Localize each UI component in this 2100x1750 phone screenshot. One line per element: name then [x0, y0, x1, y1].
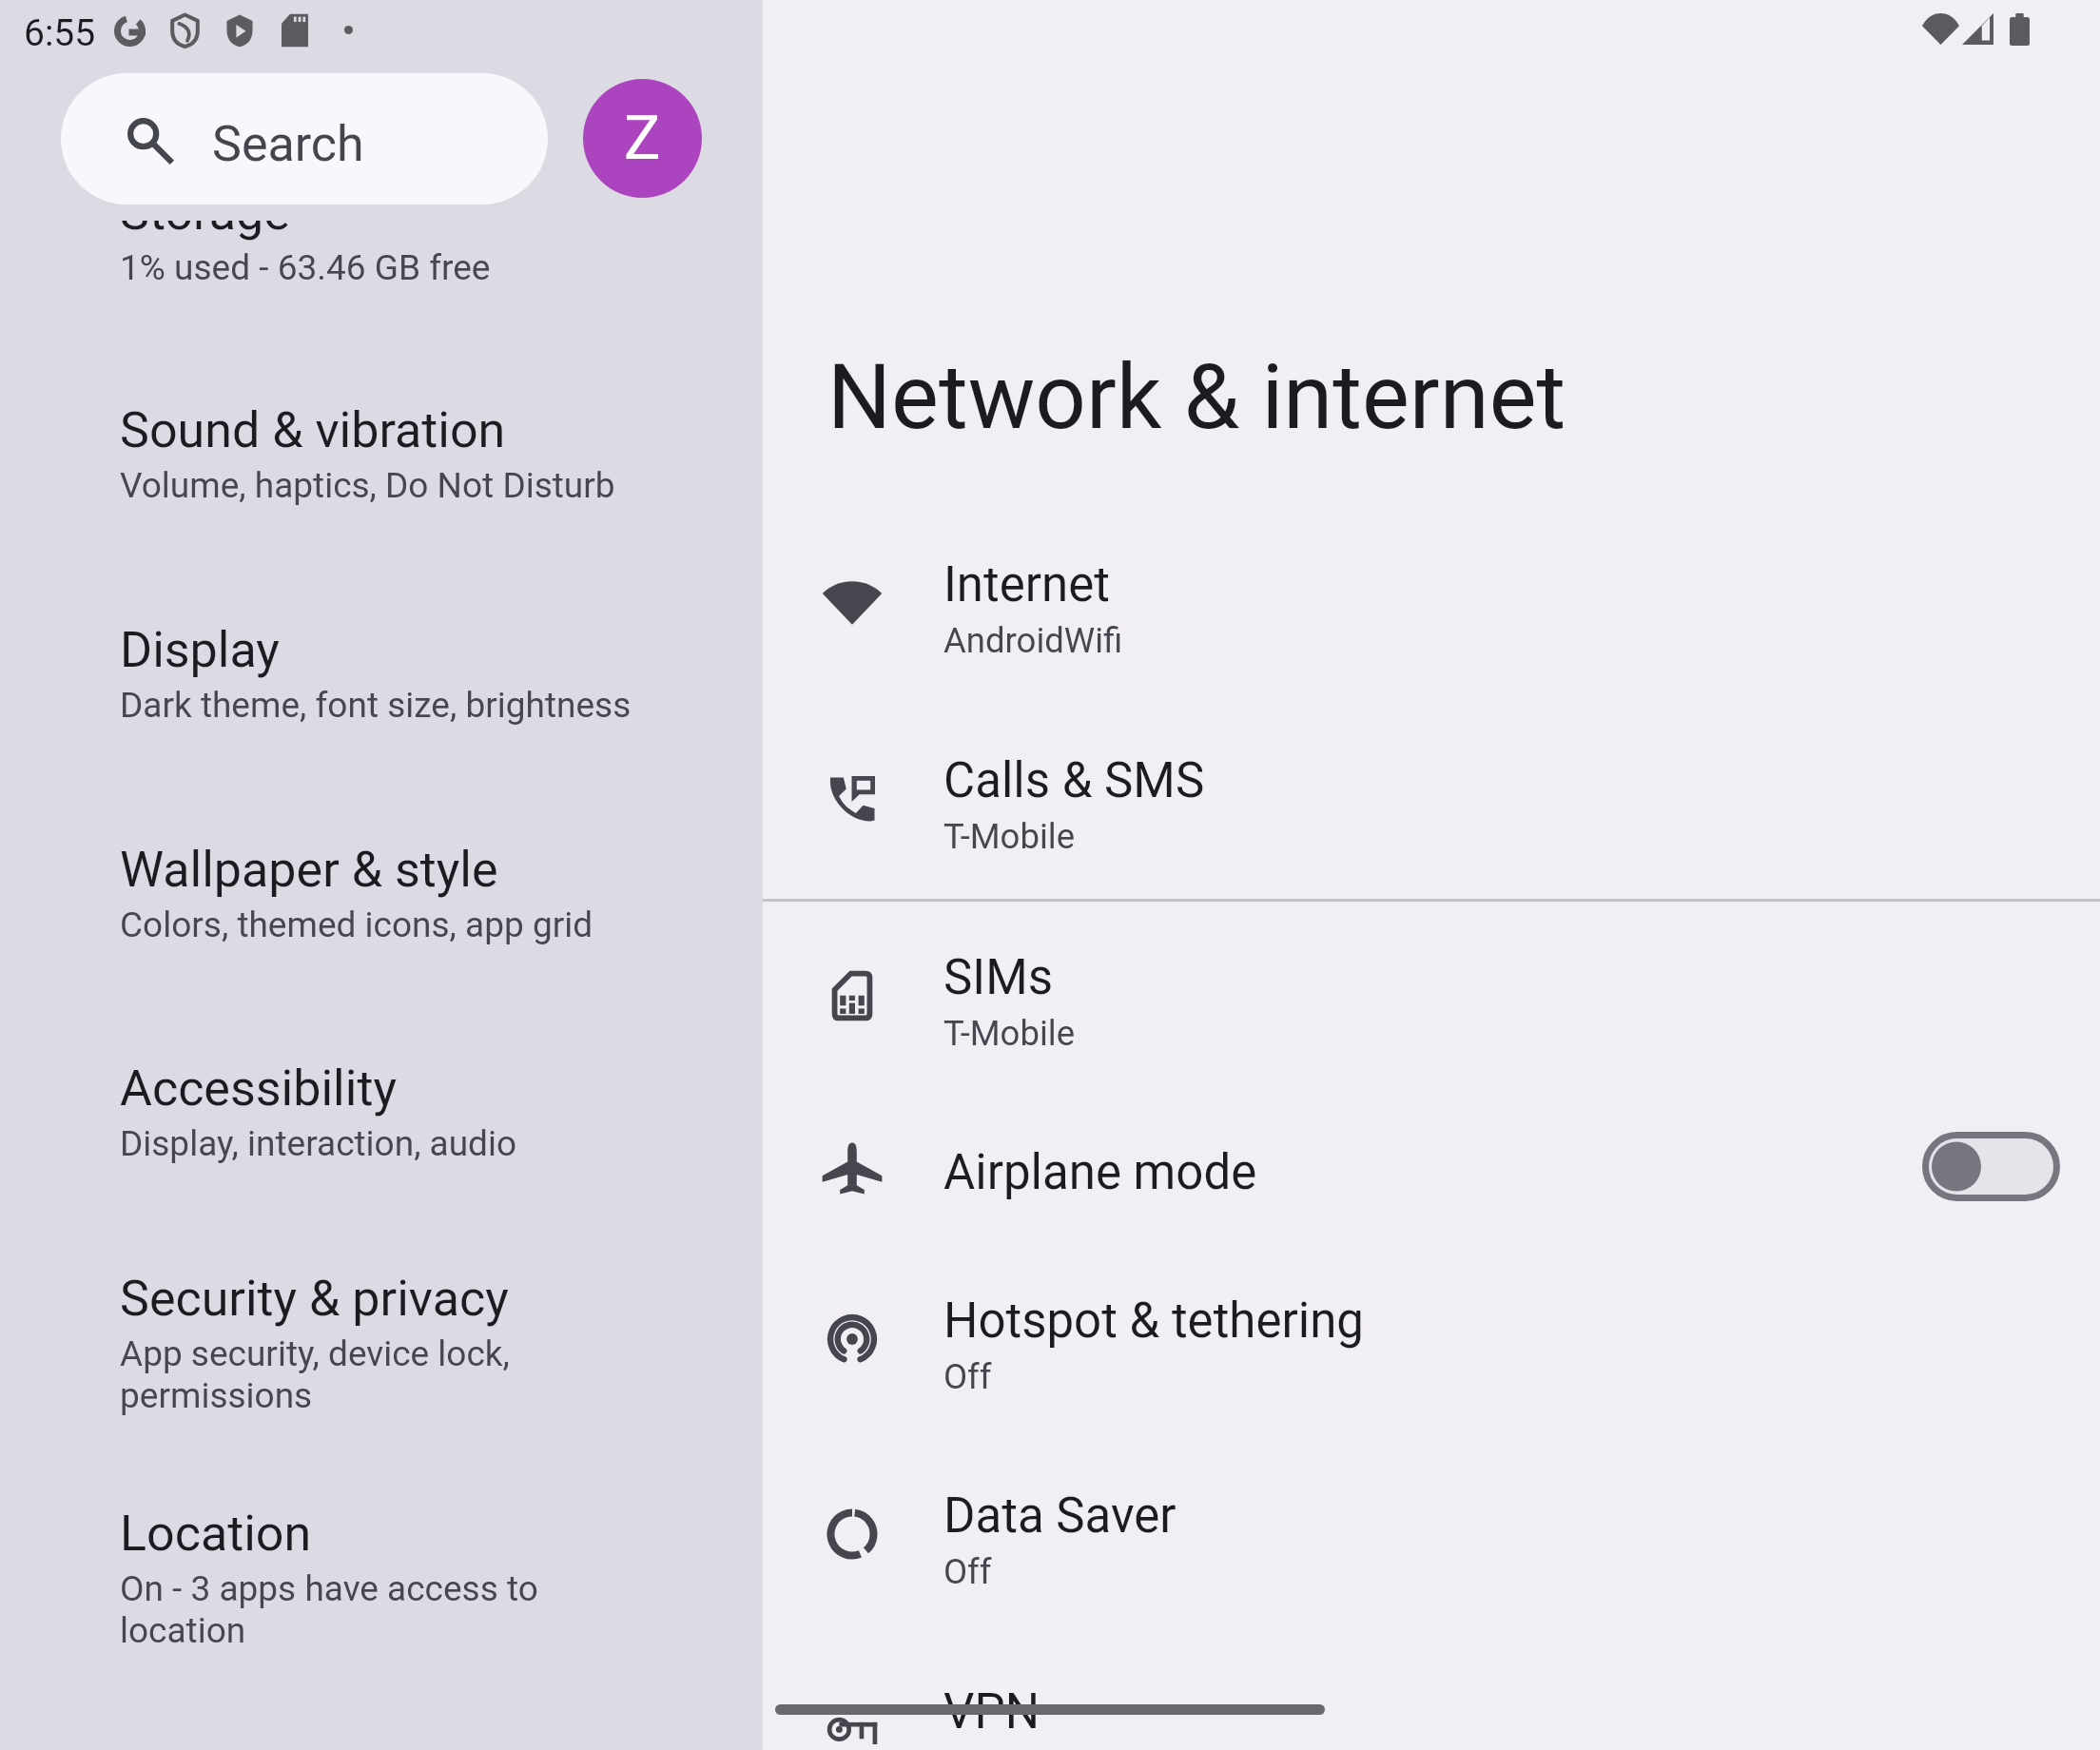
- button[interactable]: Security & privacy: [0, 1218, 763, 1399]
- staticText: Colors, themed icons, app grid: [120, 902, 593, 946]
- staticText: Sound & vibration: [120, 397, 506, 460]
- button[interactable]: Data Saver: [763, 1426, 2100, 1616]
- staticText: Storage: [120, 179, 290, 243]
- button[interactable]: SIMs: [763, 887, 2100, 1078]
- staticText: Display: [120, 616, 280, 680]
- staticText: Dark theme, font size, brightness: [120, 682, 632, 727]
- button[interactable]: VPN: [763, 1622, 2100, 1750]
- staticText: Search: [212, 110, 364, 174]
- staticText: 6:55: [24, 8, 96, 55]
- staticText: Off: [943, 1548, 992, 1593]
- staticText: App security, device lock,: [120, 1331, 510, 1375]
- button[interactable]: Hotspot & tethering: [763, 1231, 2100, 1421]
- button[interactable]: Accessibility: [0, 1008, 763, 1189]
- staticText: Internet: [943, 552, 1110, 613]
- staticText: Data Saver: [943, 1483, 1176, 1545]
- staticText: T-Mobile: [943, 813, 1076, 858]
- staticText: Airplane mode: [943, 1139, 1257, 1201]
- staticText: Network & internet: [827, 338, 1566, 452]
- staticText: T-Mobile: [943, 1010, 1076, 1055]
- button[interactable]: Airplane mode toggle: [1922, 1132, 2060, 1201]
- button[interactable]: Location: [0, 1453, 763, 1634]
- staticText: Wallpaper & style: [120, 836, 498, 900]
- staticText: 1% used - 63.46 GB free: [120, 244, 491, 289]
- button[interactable]: Sound & vibration: [0, 350, 763, 531]
- button[interactable]: Display: [0, 570, 763, 750]
- button[interactable]: Internet: [763, 495, 2100, 685]
- staticText: Display, interaction, audio: [120, 1120, 517, 1165]
- staticText: On - 3 apps have access to: [120, 1565, 538, 1610]
- button[interactable]: Search: [61, 73, 548, 204]
- staticText: AndroidWifi: [943, 617, 1123, 662]
- staticText: Security & privacy: [120, 1265, 509, 1329]
- staticText: SIMs: [943, 944, 1053, 1006]
- staticText: VPN: [943, 1679, 1040, 1740]
- staticText: Volume, haptics, Do Not Disturb: [120, 462, 615, 507]
- staticText: Hotspot & tethering: [943, 1288, 1364, 1350]
- button[interactable]: Calls & SMS: [763, 690, 2100, 881]
- staticText: permissions: [120, 1372, 313, 1417]
- staticText: location: [120, 1607, 246, 1652]
- button[interactable]: Wallpaper & style: [0, 789, 763, 970]
- staticText: Off: [943, 1353, 992, 1398]
- button[interactable]: Airplane mode: [763, 1082, 2100, 1235]
- button[interactable]: Account: [583, 79, 702, 198]
- staticText: Z: [624, 103, 661, 174]
- button[interactable]: Storage: [0, 132, 763, 313]
- staticText: Location: [120, 1500, 312, 1564]
- staticText: Calls & SMS: [943, 748, 1205, 809]
- staticText: Accessibility: [120, 1055, 398, 1118]
